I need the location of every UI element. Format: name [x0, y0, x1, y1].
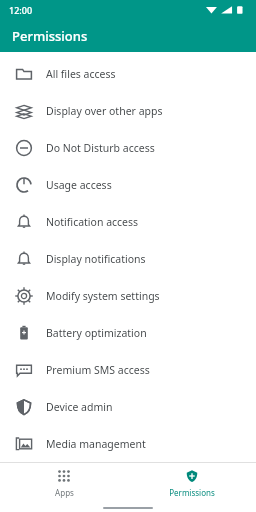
staticText: Permissions	[169, 487, 215, 498]
button[interactable]: Display notifications	[0, 240, 256, 277]
staticText: Display notifications	[46, 252, 146, 266]
staticText: Media management	[46, 437, 146, 451]
button[interactable]: Do Not Disturb access	[0, 129, 256, 166]
staticText: Device admin	[46, 400, 113, 414]
button[interactable]: Notification access	[0, 203, 256, 240]
staticText: Modify system settings	[46, 289, 160, 303]
button[interactable]: Battery optimization	[0, 314, 256, 351]
staticText: Notification access	[46, 215, 139, 229]
staticText: Premium SMS access	[46, 363, 150, 377]
button[interactable]: All files access	[0, 55, 256, 92]
button[interactable]: Modify system settings	[0, 277, 256, 314]
button[interactable]: Device admin	[0, 388, 256, 425]
staticText: Battery optimization	[46, 326, 147, 340]
button[interactable]: Usage access	[0, 166, 256, 203]
staticText: Do Not Disturb access	[46, 141, 155, 155]
button[interactable]: Permissions	[128, 468, 256, 498]
staticText: Display over other apps	[46, 104, 163, 118]
button[interactable]: Apps	[0, 468, 128, 498]
staticText: Apps	[55, 487, 74, 498]
button[interactable]: Media management	[0, 425, 256, 462]
button[interactable]: Premium SMS access	[0, 351, 256, 388]
staticText: Usage access	[46, 178, 112, 192]
staticText: 12:00	[9, 4, 33, 16]
button[interactable]: Display over other apps	[0, 92, 256, 129]
staticText: Permissions	[12, 27, 88, 45]
staticText: All files access	[46, 67, 116, 81]
